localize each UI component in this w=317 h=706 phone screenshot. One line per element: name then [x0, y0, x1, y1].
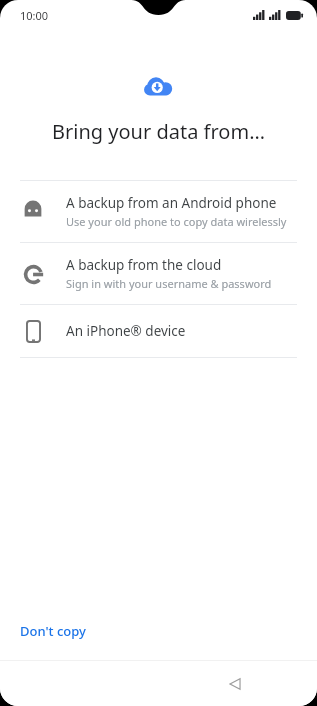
other: iPhone device: [26, 320, 41, 343]
staticText: A backup from the cloud: [66, 256, 222, 274]
button[interactable]: Google account: [0, 243, 317, 304]
staticText: Bring your data from…: [0, 118, 317, 145]
button[interactable]: Android phone: [0, 181, 317, 242]
other: Android phone: [22, 201, 44, 223]
staticText: 10:00: [20, 8, 49, 23]
button[interactable]: Back: [218, 667, 252, 701]
button[interactable]: Don't copy: [0, 614, 106, 648]
staticText: Sign in with your username & password: [66, 276, 272, 291]
staticText: Use your old phone to copy data wireless…: [66, 214, 287, 229]
button[interactable]: iPhone device: [0, 305, 317, 357]
staticText: An iPhone® device: [66, 322, 186, 340]
other: Google account: [23, 264, 44, 285]
staticText: A backup from an Android phone: [66, 194, 277, 212]
staticText: Don't copy: [20, 622, 86, 640]
